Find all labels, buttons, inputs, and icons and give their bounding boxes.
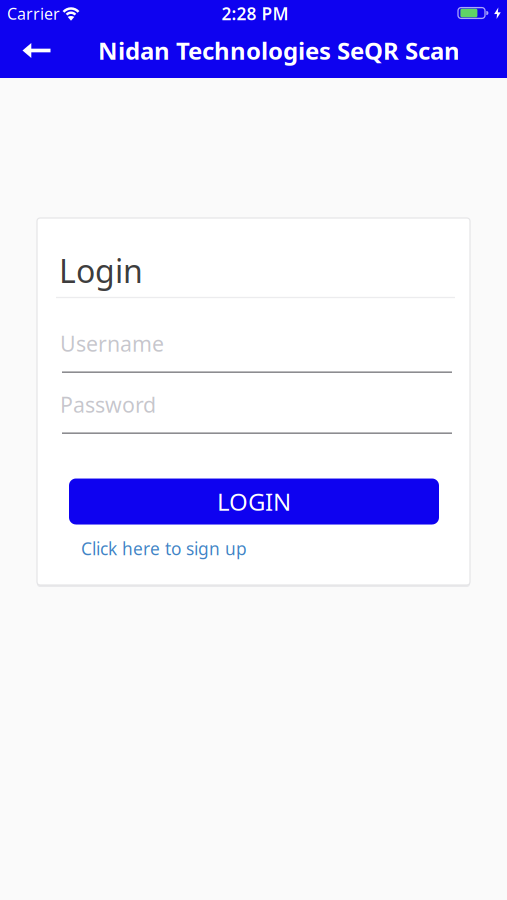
staticText: Nidan Technologies SeQR Scan <box>98 35 460 66</box>
button[interactable]: Back <box>14 32 58 68</box>
staticText: Username <box>60 329 164 358</box>
staticText: LOGIN <box>217 486 291 517</box>
staticText: Password <box>60 390 156 419</box>
staticText: Carrier <box>7 3 60 24</box>
staticText: 2:28 PM <box>221 2 288 25</box>
button[interactable]: Username <box>62 317 452 373</box>
button[interactable]: Password <box>62 378 452 434</box>
staticText: Login <box>59 249 143 292</box>
staticText: Click here to sign up <box>81 537 247 560</box>
button[interactable]: Click here to sign up <box>81 536 331 560</box>
button[interactable]: LOGIN <box>69 478 439 524</box>
